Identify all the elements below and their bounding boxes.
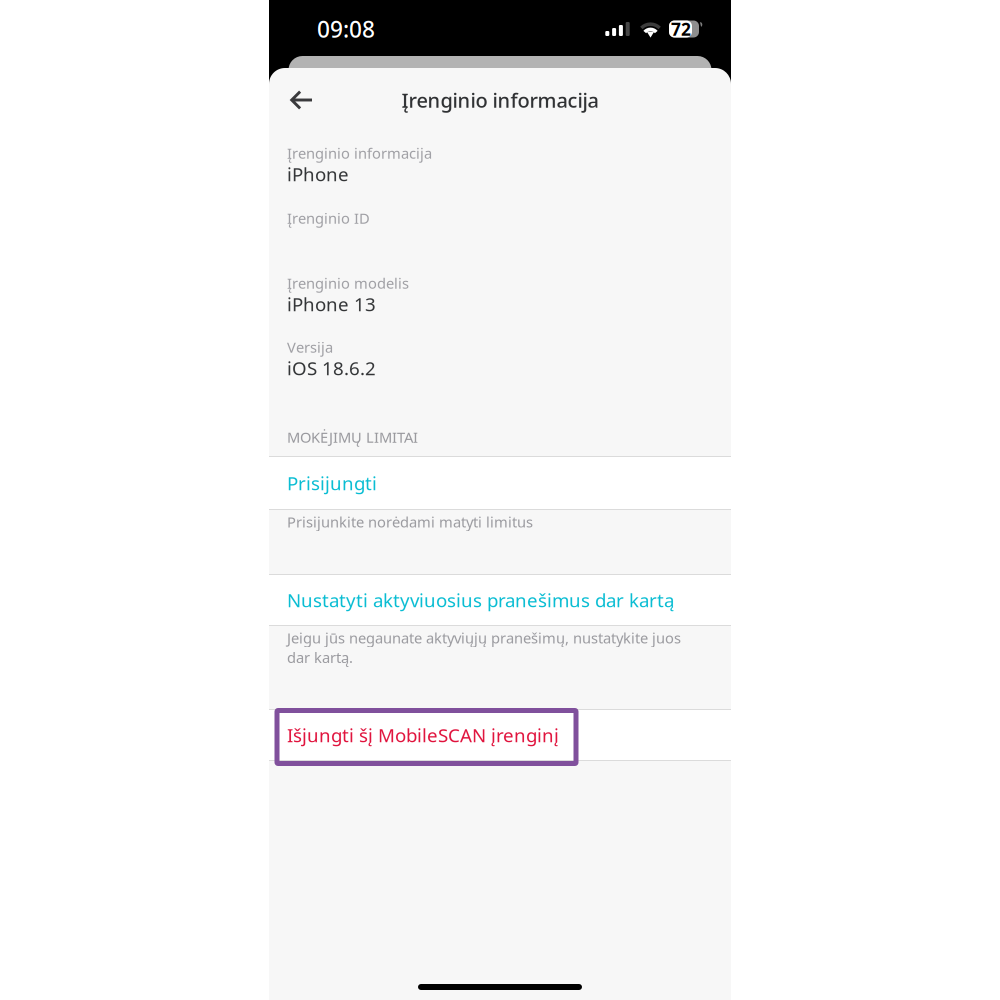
button[interactable]: Prisijungti — [269, 457, 731, 509]
button[interactable]: Nustatyti aktyviuosius pranešimus dar ka… — [269, 575, 731, 625]
staticText: Įrenginio modelis — [287, 273, 409, 293]
staticText: Prisijungti — [287, 471, 377, 495]
staticText: MOKĖJIMŲ LIMITAI — [287, 427, 418, 447]
staticText: 72 — [671, 17, 691, 40]
staticText: iPhone 13 — [287, 292, 376, 316]
staticText: Prisijunkite norėdami matyti limitus — [287, 512, 533, 531]
staticText: Įrenginio informacija — [287, 143, 432, 163]
staticText: Nustatyti aktyviuosius pranešimus dar ka… — [287, 588, 674, 612]
staticText: Įrenginio ID — [287, 208, 370, 228]
button[interactable]: Išjungti šį MobileSCAN įrenginį — [269, 710, 731, 760]
staticText: Versija — [287, 337, 333, 357]
staticText: Jeigu jūs negaunate aktyviųjų pranešimų,… — [287, 628, 681, 667]
staticText: 09:08 — [317, 14, 375, 44]
staticText: Išjungti šį MobileSCAN įrenginį — [287, 723, 559, 747]
staticText: iPhone — [287, 162, 349, 186]
staticText: Įrenginio informacija — [401, 87, 598, 113]
staticText: iOS 18.6.2 — [287, 356, 376, 380]
button[interactable]: Atgal — [280, 78, 324, 122]
